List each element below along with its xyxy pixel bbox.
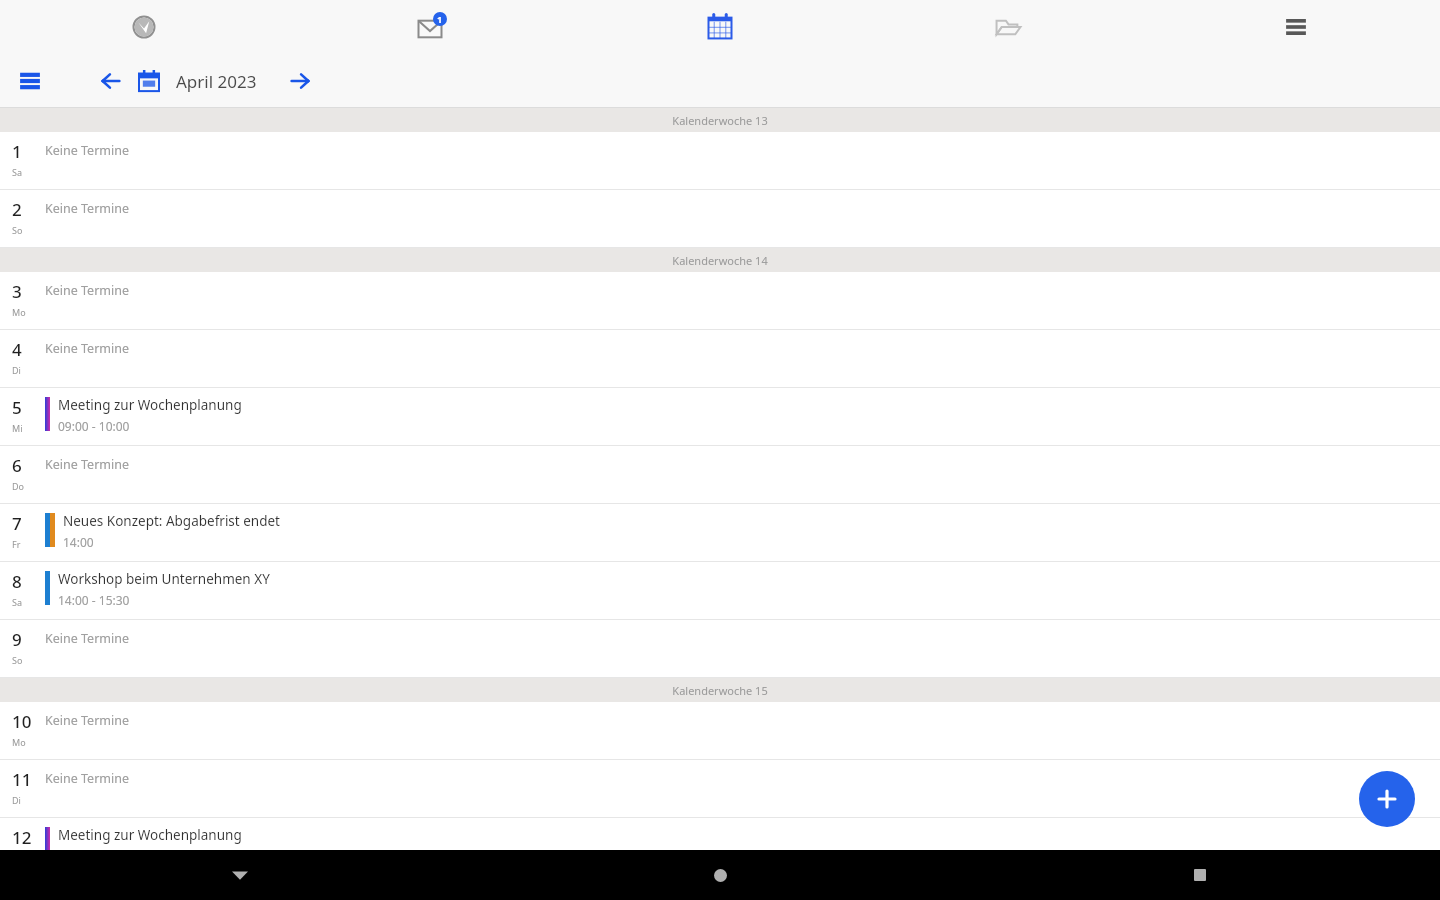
staticText: Fr xyxy=(12,538,21,550)
staticText: 1 xyxy=(12,140,22,163)
staticText: Keine Termine xyxy=(45,456,130,473)
button[interactable]: Dateien xyxy=(986,5,1030,49)
staticText: Keine Termine xyxy=(45,142,130,159)
staticText: 2 xyxy=(12,198,22,221)
staticText: Sa xyxy=(12,166,22,178)
staticText: Neues Konzept: Abgabefrist endet xyxy=(63,512,280,530)
button[interactable]: 6 xyxy=(0,446,1440,504)
staticText: Keine Termine xyxy=(45,712,130,729)
staticText: 14:00 xyxy=(63,534,94,550)
button[interactable]: 2 xyxy=(0,190,1440,248)
button[interactable]: 5 xyxy=(0,388,1440,446)
staticText: Do xyxy=(12,480,25,492)
staticText: Meeting zur Wochenplanung xyxy=(58,396,242,414)
button[interactable]: April 2023 xyxy=(136,68,257,94)
staticText: Kalenderwoche 14 xyxy=(672,253,768,268)
button[interactable]: 10 xyxy=(0,702,1440,760)
button[interactable]: 1 xyxy=(0,132,1440,190)
staticText: Sa xyxy=(12,596,22,608)
button[interactable]: Startbildschirm xyxy=(700,855,740,895)
button[interactable]: Vorheriger Monat xyxy=(90,60,132,102)
staticText: 4 xyxy=(12,338,22,361)
staticText: Keine Termine xyxy=(45,630,130,647)
button[interactable]: Kalender xyxy=(698,5,742,49)
button[interactable]: Browser xyxy=(122,5,166,49)
staticText: 11 xyxy=(12,768,32,791)
staticText: Di xyxy=(12,364,21,376)
button[interactable]: 8 xyxy=(0,562,1440,620)
staticText: 12 xyxy=(12,826,32,849)
button[interactable]: 3 xyxy=(0,272,1440,330)
staticText: Keine Termine xyxy=(45,282,130,299)
staticText: 7 xyxy=(12,512,22,535)
button[interactable]: Neuer Termin xyxy=(1359,771,1415,827)
staticText: 6 xyxy=(12,454,22,477)
staticText: Di xyxy=(12,794,21,806)
staticText: 3 xyxy=(12,280,22,303)
staticText: 14:00 - 15:30 xyxy=(58,592,130,608)
button[interactable]: 4 xyxy=(0,330,1440,388)
staticText: Keine Termine xyxy=(45,200,130,217)
staticText: 10 xyxy=(12,710,32,733)
staticText: 9 xyxy=(12,628,22,651)
button[interactable]: Menü xyxy=(1274,5,1318,49)
staticText: Mi xyxy=(12,422,23,434)
button[interactable]: Navigation xyxy=(8,59,52,103)
button[interactable]: 7 xyxy=(0,504,1440,562)
staticText: Kalenderwoche 15 xyxy=(672,683,768,698)
button[interactable]: E-Mail xyxy=(410,5,454,49)
button[interactable]: Übersicht xyxy=(1180,855,1220,895)
staticText: April 2023 xyxy=(176,70,257,93)
staticText: Mo xyxy=(12,306,26,318)
staticText: 5 xyxy=(12,396,22,419)
staticText: 09:00 - 10:00 xyxy=(58,418,130,434)
staticText: So xyxy=(12,224,23,236)
button[interactable]: Nächster Monat xyxy=(279,60,321,102)
staticText: So xyxy=(12,654,23,666)
staticText: Keine Termine xyxy=(45,340,130,357)
button[interactable]: 12 xyxy=(0,818,1440,850)
button[interactable]: 11 xyxy=(0,760,1440,818)
staticText: Mo xyxy=(12,736,26,748)
staticText: 1 xyxy=(437,13,443,25)
button[interactable]: 9 xyxy=(0,620,1440,678)
button[interactable]: Zurück xyxy=(220,855,260,895)
staticText: Kalenderwoche 13 xyxy=(672,113,768,128)
staticText: Workshop beim Unternehmen XY xyxy=(58,570,270,588)
staticText: Meeting zur Wochenplanung xyxy=(58,826,242,844)
staticText: 8 xyxy=(12,570,22,593)
staticText: Keine Termine xyxy=(45,770,130,787)
